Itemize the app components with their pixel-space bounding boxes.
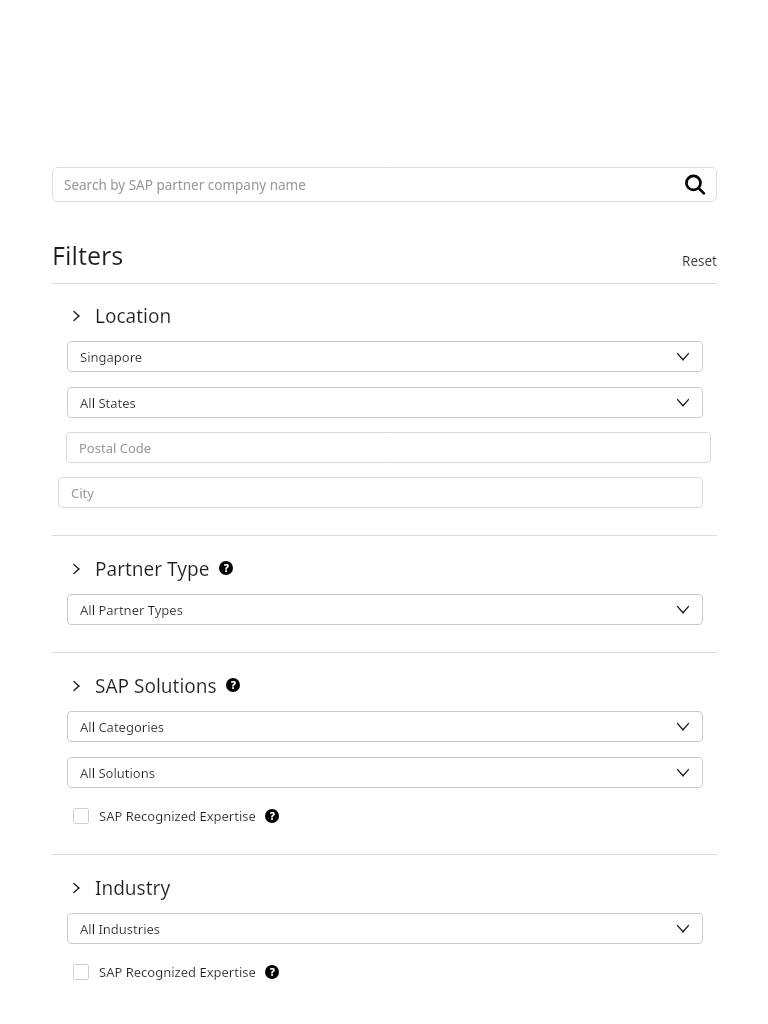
- button[interactable]: All Solutions: [67, 757, 703, 788]
- button[interactable]: Help: [265, 965, 279, 979]
- staticText: ?: [231, 678, 236, 692]
- button[interactable]: Location: [52, 299, 717, 333]
- button[interactable]: All States: [67, 387, 703, 418]
- staticText: SAP Recognized Expertise: [99, 807, 256, 825]
- staticText: City: [71, 484, 94, 502]
- button[interactable]: All Industries: [67, 913, 703, 944]
- staticText: ?: [270, 965, 275, 979]
- staticText: ?: [224, 561, 229, 575]
- button[interactable]: Partner Type: [52, 552, 717, 586]
- button[interactable]: Postal Code: [66, 432, 711, 463]
- staticText: ?: [270, 809, 275, 823]
- button[interactable]: Search by SAP partner company name: [52, 167, 717, 202]
- staticText: Search by SAP partner company name: [64, 176, 306, 194]
- staticText: Reset: [682, 252, 717, 270]
- staticText: Location: [95, 303, 172, 329]
- button[interactable]: All Categories: [67, 711, 703, 742]
- button[interactable]: Help: [226, 678, 240, 692]
- button[interactable]: SAP Solutions: [52, 669, 717, 703]
- button[interactable]: All Partner Types: [67, 594, 703, 625]
- button[interactable]: SAP Recognized Expertise: [73, 804, 279, 828]
- staticText: Partner Type: [95, 556, 210, 582]
- staticText: All Categories: [80, 718, 165, 736]
- button[interactable]: Singapore: [67, 341, 703, 372]
- staticText: All Solutions: [80, 764, 155, 782]
- staticText: All Industries: [80, 920, 161, 938]
- button[interactable]: Help: [265, 809, 279, 823]
- button[interactable]: Industry: [52, 871, 717, 905]
- staticText: All States: [80, 394, 136, 412]
- staticText: Singapore: [80, 348, 143, 366]
- button[interactable]: Help: [219, 561, 233, 575]
- staticText: SAP Solutions: [95, 673, 217, 699]
- button[interactable]: SAP Recognized Expertise: [73, 960, 279, 984]
- staticText: Industry: [95, 875, 171, 901]
- staticText: SAP Recognized Expertise: [99, 963, 256, 981]
- button[interactable]: Reset: [682, 252, 717, 272]
- staticText: Filters: [52, 238, 124, 272]
- button[interactable]: City: [58, 477, 703, 508]
- staticText: Postal Code: [79, 439, 152, 457]
- button[interactable]: Search: [678, 168, 712, 202]
- staticText: All Partner Types: [80, 601, 183, 619]
